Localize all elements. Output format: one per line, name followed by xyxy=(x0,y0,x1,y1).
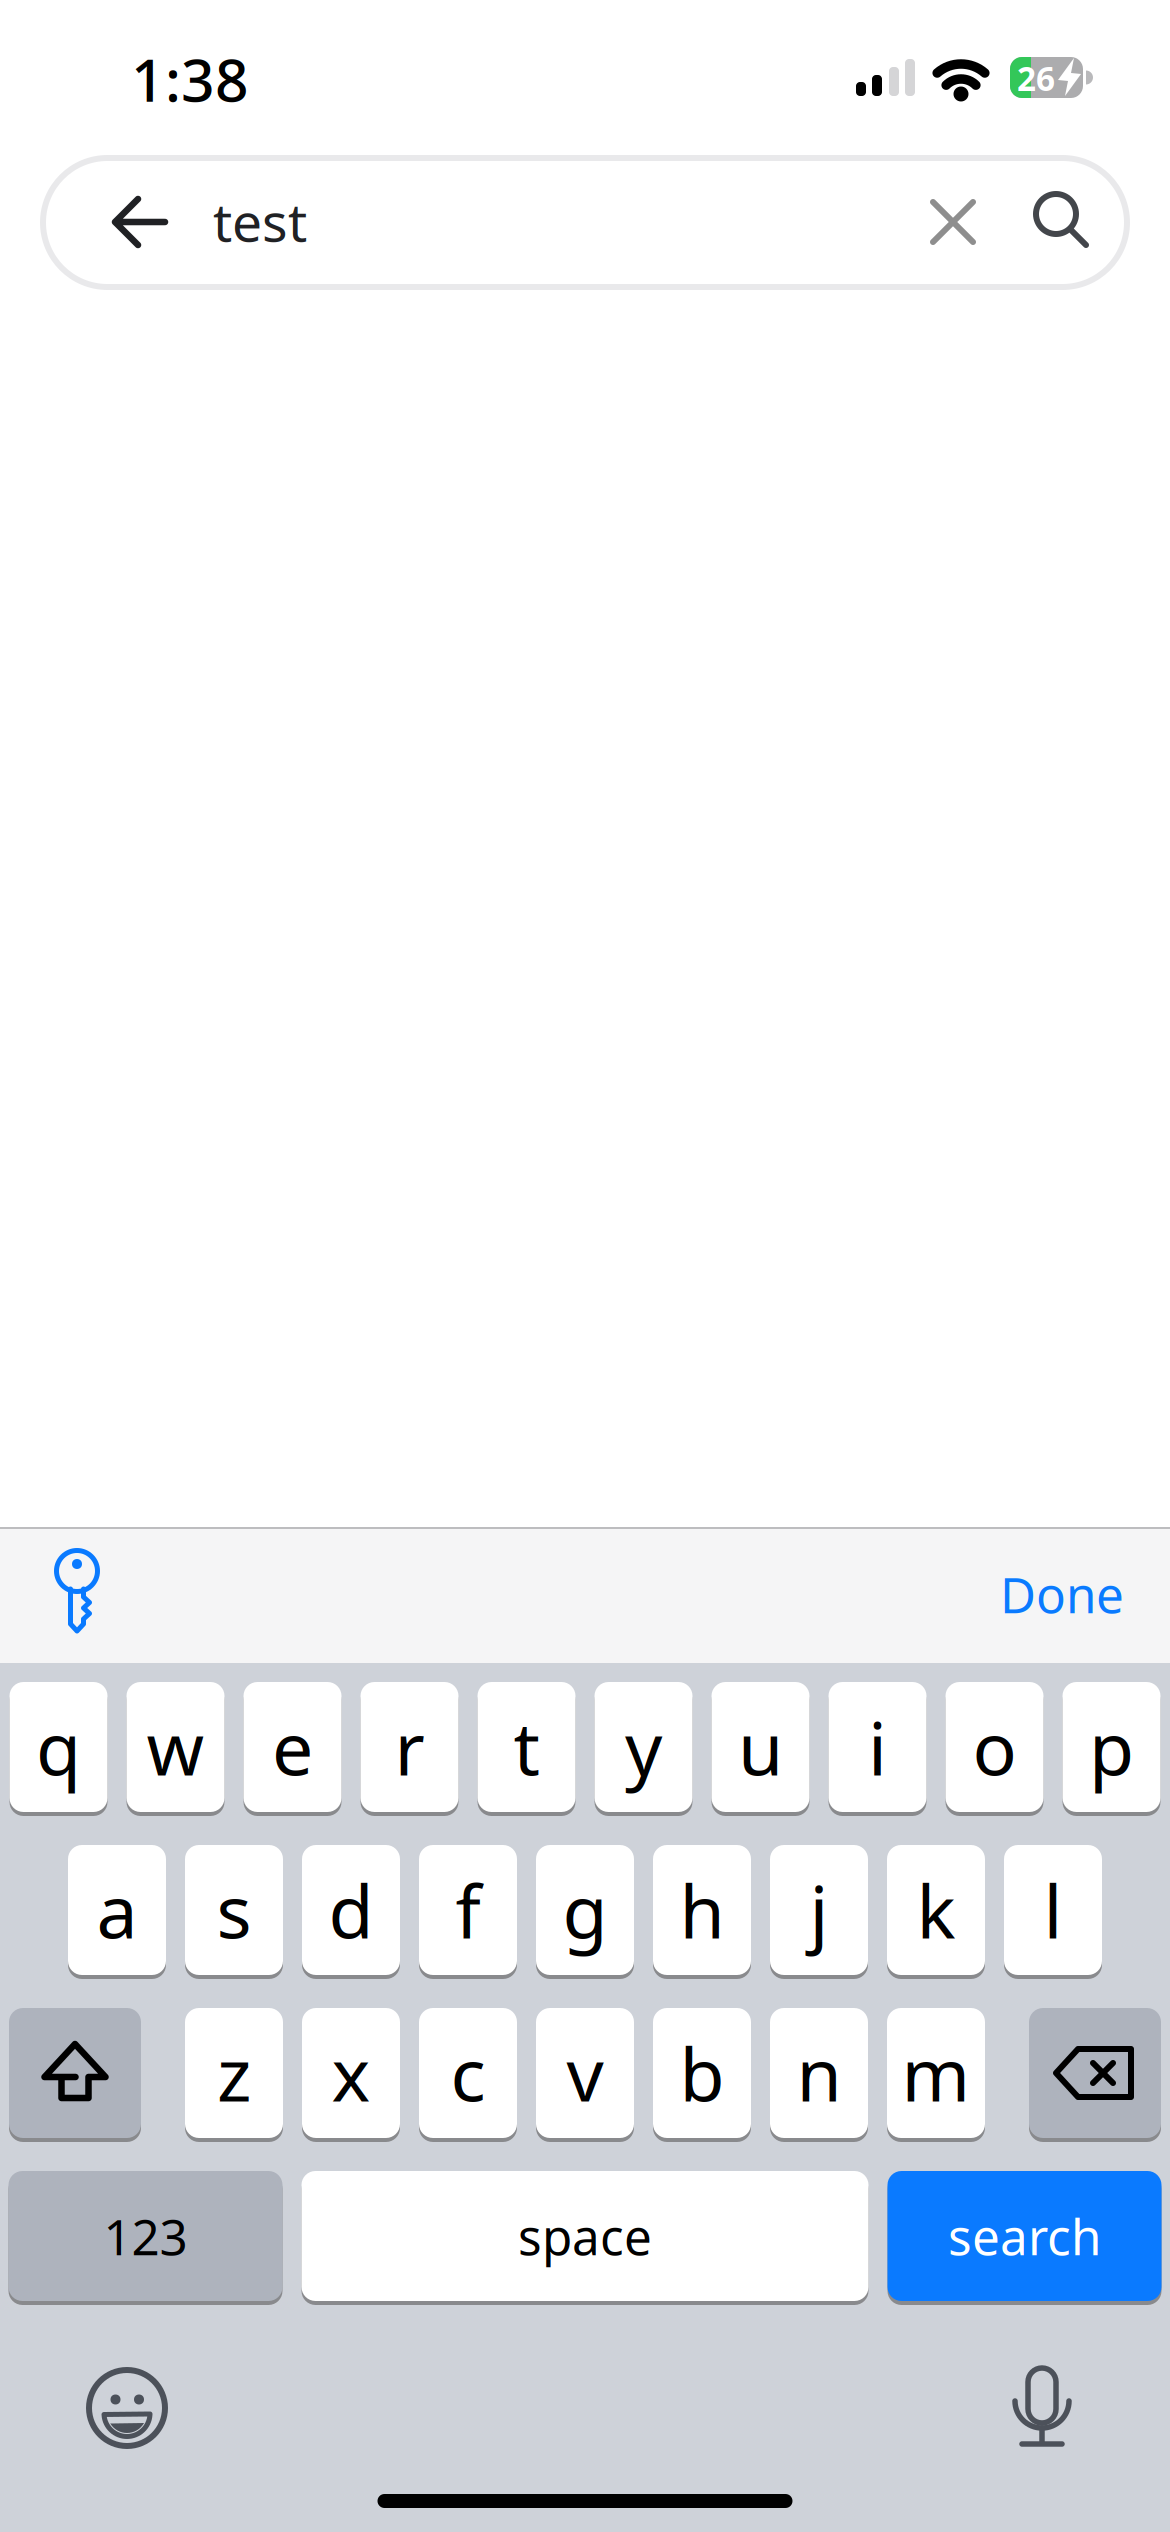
button[interactable]: p xyxy=(1062,1682,1160,1812)
button[interactable]: f xyxy=(419,1845,517,1975)
staticText: h xyxy=(679,1861,724,1959)
button[interactable]: x xyxy=(302,2008,400,2138)
staticText: f xyxy=(455,1861,480,1959)
button[interactable]: r xyxy=(360,1682,458,1812)
button[interactable]: j xyxy=(770,1845,868,1975)
button[interactable]: g xyxy=(536,1845,634,1975)
button[interactable]: t xyxy=(477,1682,575,1812)
button[interactable]: search xyxy=(887,2171,1161,2301)
button[interactable]: z xyxy=(185,2008,283,2138)
button[interactable]: h xyxy=(653,1845,751,1975)
button[interactable]: Passwords xyxy=(49,1547,105,1639)
staticText: u xyxy=(738,1698,783,1796)
button[interactable]: l xyxy=(1004,1845,1102,1975)
button[interactable]: v xyxy=(536,2008,634,2138)
button[interactable]: Dictation xyxy=(1010,2365,1074,2447)
button[interactable]: Done xyxy=(1000,1561,1124,1627)
staticText: c xyxy=(450,2024,485,2122)
staticText: 123 xyxy=(103,2203,187,2269)
staticText: x xyxy=(331,2024,370,2122)
staticText: g xyxy=(562,1861,607,1959)
staticText: a xyxy=(96,1861,137,1959)
button[interactable]: Back xyxy=(112,196,168,248)
staticText: r xyxy=(394,1698,424,1796)
staticText: e xyxy=(272,1698,313,1796)
button[interactable]: o xyxy=(945,1682,1043,1812)
staticText: q xyxy=(36,1698,81,1796)
staticText: m xyxy=(901,2024,970,2122)
button[interactable]: k xyxy=(887,1845,985,1975)
button[interactable]: Shift xyxy=(9,2008,141,2138)
button[interactable]: Delete xyxy=(1029,2008,1161,2138)
button[interactable]: space xyxy=(301,2171,868,2301)
button[interactable]: y xyxy=(594,1682,692,1812)
staticText: v xyxy=(566,2024,603,2122)
button[interactable]: b xyxy=(653,2008,751,2138)
button[interactable]: d xyxy=(302,1845,400,1975)
button[interactable]: c xyxy=(419,2008,517,2138)
staticText: y xyxy=(625,1698,662,1796)
staticText: l xyxy=(1043,1861,1062,1959)
button[interactable]: Clear text xyxy=(930,199,976,245)
staticText: p xyxy=(1089,1698,1134,1796)
button[interactable]: u xyxy=(711,1682,809,1812)
staticText: t xyxy=(513,1698,539,1796)
button[interactable]: w xyxy=(126,1682,224,1812)
button[interactable]: 123 xyxy=(8,2171,282,2301)
staticText: s xyxy=(216,1861,251,1959)
button[interactable]: s xyxy=(185,1845,283,1975)
staticText: 1:38 xyxy=(131,40,249,118)
button[interactable]: Search xyxy=(1033,192,1091,250)
staticText: k xyxy=(916,1861,955,1959)
staticText: space xyxy=(518,2203,652,2269)
staticText: o xyxy=(972,1698,1016,1796)
staticText: d xyxy=(328,1861,373,1959)
button[interactable]: e xyxy=(243,1682,341,1812)
staticText: 26 xyxy=(1017,56,1055,100)
staticText: Done xyxy=(1000,1561,1124,1627)
staticText: b xyxy=(679,2024,724,2122)
button[interactable]: i xyxy=(828,1682,926,1812)
staticText: test xyxy=(213,186,307,256)
button[interactable]: Emoji xyxy=(87,2368,167,2448)
button[interactable]: a xyxy=(68,1845,166,1975)
staticText: j xyxy=(809,1861,828,1959)
button[interactable]: q xyxy=(9,1682,107,1812)
staticText: w xyxy=(146,1698,204,1796)
staticText: search xyxy=(948,2203,1101,2269)
staticText: n xyxy=(796,2024,841,2122)
staticText: i xyxy=(868,1698,887,1796)
staticText: z xyxy=(217,2024,251,2122)
button[interactable]: n xyxy=(770,2008,868,2138)
button[interactable]: m xyxy=(887,2008,985,2138)
